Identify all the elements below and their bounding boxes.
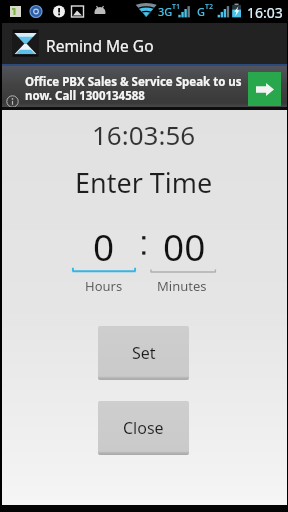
staticText: 16:03: [247, 3, 283, 22]
staticText: 16:03:56: [92, 117, 196, 152]
button[interactable]: Office PBX Sales & Service Speak to us n…: [0, 66, 288, 108]
staticText: T2: [205, 2, 213, 12]
button[interactable]: Set: [98, 326, 189, 380]
button[interactable]: Open advertisement: [248, 72, 281, 106]
staticText: 3G: [158, 4, 173, 19]
staticText: Enter Time: [75, 164, 213, 201]
staticText: 0: [93, 221, 115, 271]
staticText: Minutes: [157, 277, 207, 295]
staticText: Office PBX Sales & Service Speak to us n…: [25, 74, 242, 104]
staticText: Close: [123, 417, 164, 439]
button[interactable]: Close: [98, 401, 189, 455]
staticText: Set: [132, 342, 156, 364]
staticText: Hours: [85, 277, 123, 295]
staticText: G: [197, 4, 205, 19]
staticText: Remind Me Go: [46, 35, 154, 56]
staticText: 00: [163, 221, 206, 271]
staticText: T1: [172, 2, 180, 12]
